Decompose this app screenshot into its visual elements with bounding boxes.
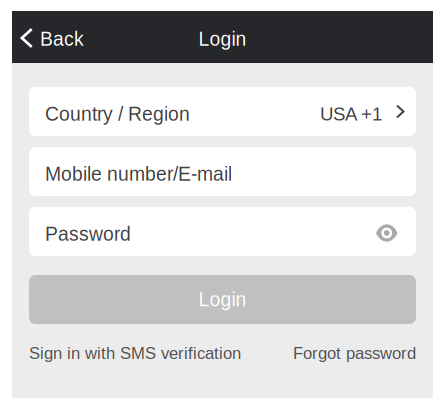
button[interactable]: Forgot password	[293, 340, 416, 367]
button[interactable]: Sign in with SMS verification	[29, 340, 241, 367]
button[interactable]: Login	[29, 275, 416, 324]
button[interactable]: Password	[29, 207, 416, 256]
staticText: Back	[40, 28, 84, 50]
staticText: Mobile number/E-mail	[45, 163, 232, 185]
button[interactable]: Back	[12, 11, 96, 63]
staticText: Forgot password	[293, 344, 416, 363]
staticText: Password	[45, 223, 131, 245]
button[interactable]: Country / Region	[29, 87, 416, 136]
staticText: Login	[198, 289, 246, 310]
button[interactable]: Mobile number/E-mail	[29, 147, 416, 196]
staticText: Country / Region	[45, 103, 190, 125]
staticText: Login	[198, 28, 246, 50]
staticText: Sign in with SMS verification	[29, 344, 241, 363]
staticText: USA +1	[320, 104, 382, 124]
